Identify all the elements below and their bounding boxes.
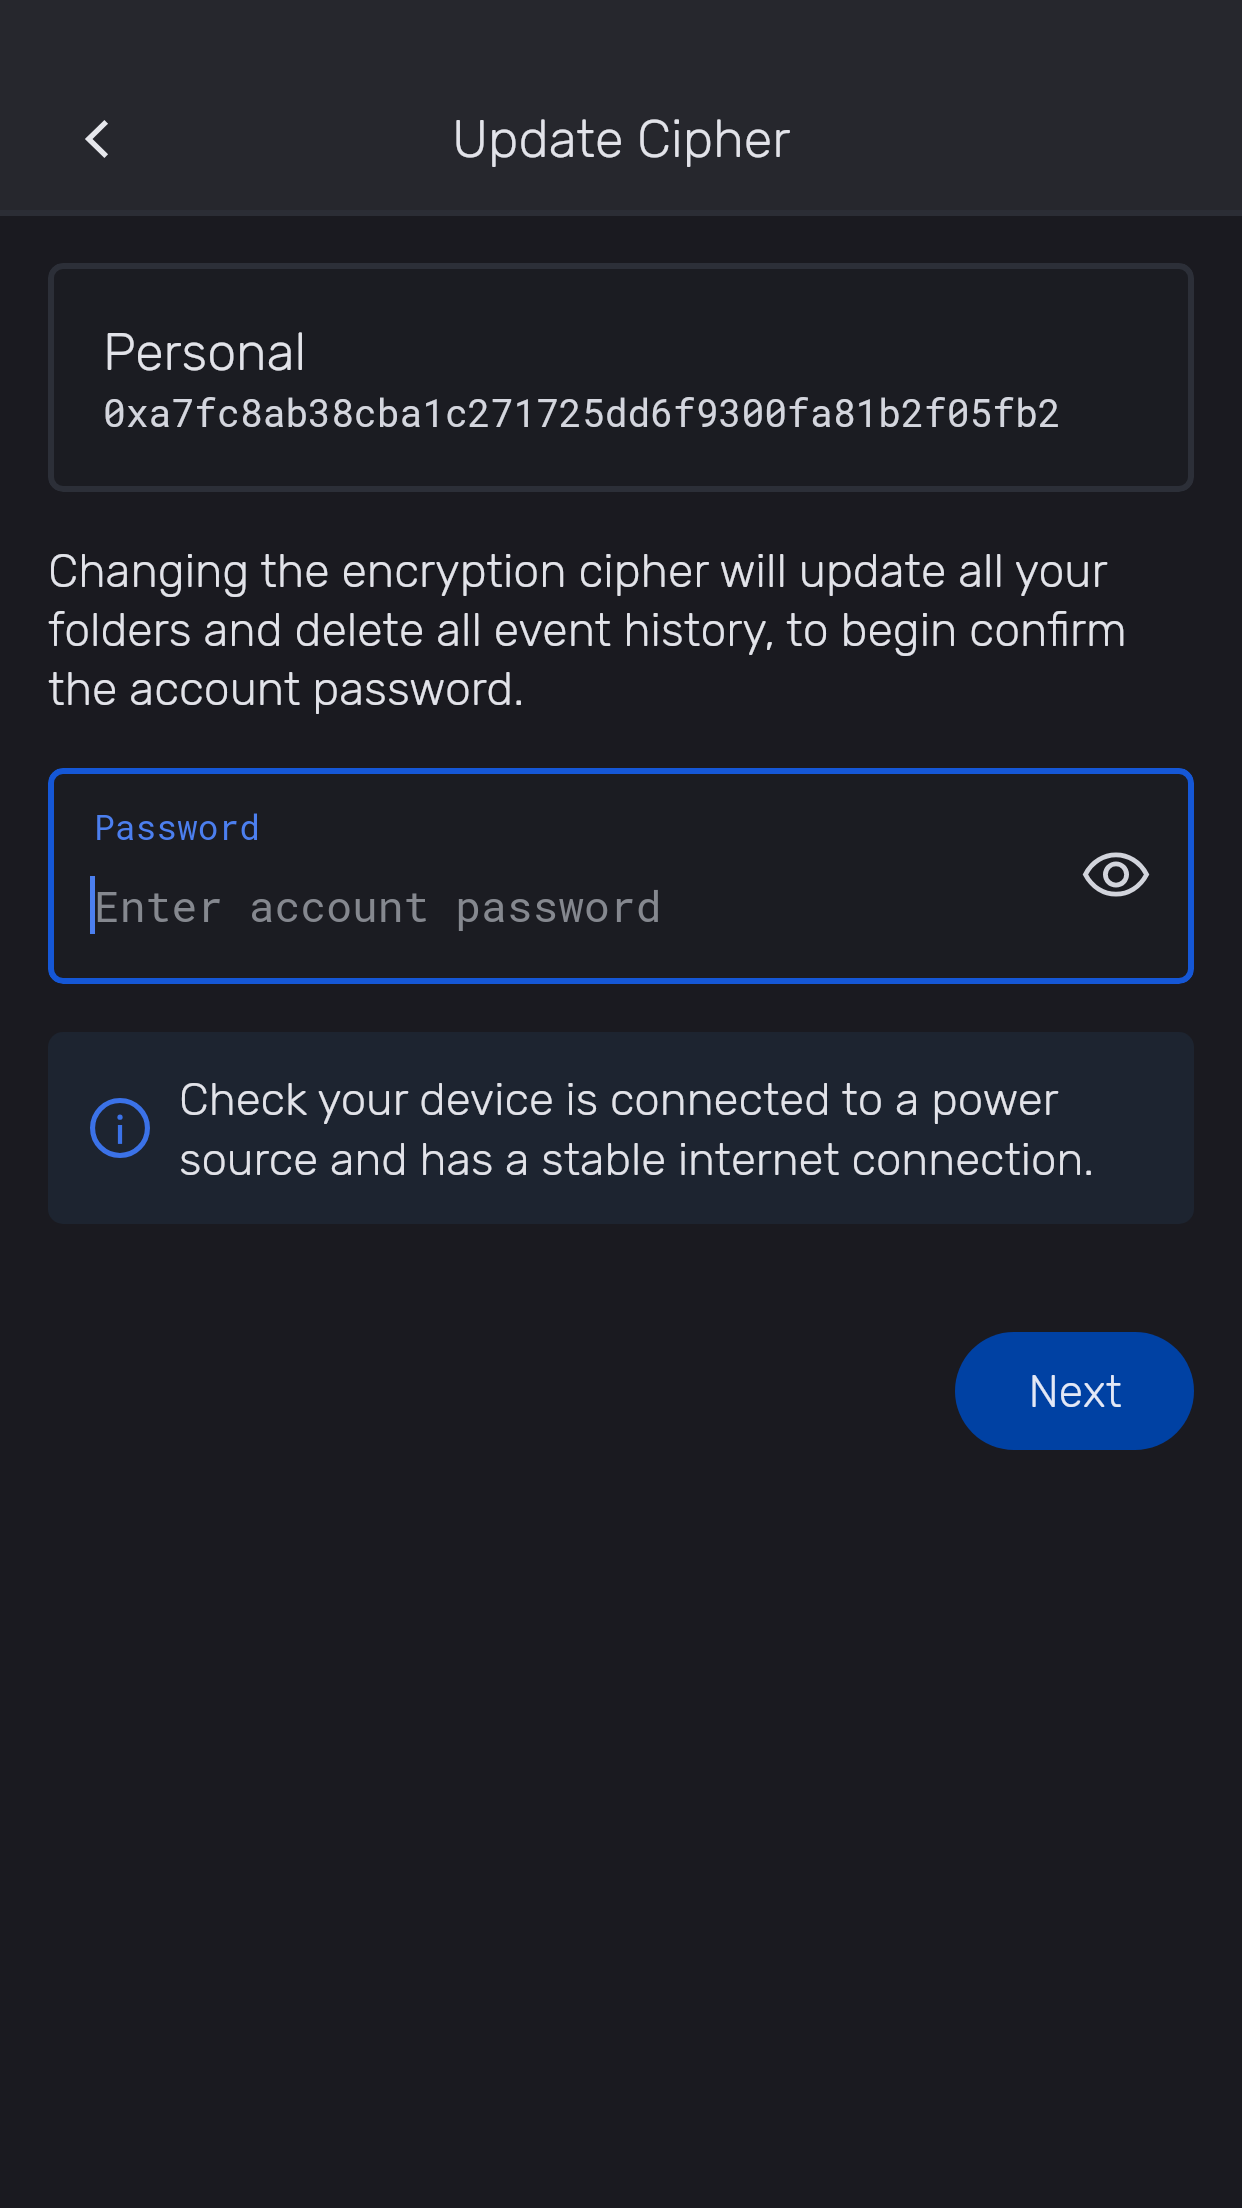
staticText: Next	[1028, 1365, 1122, 1418]
staticText: Update Cipher	[452, 108, 791, 170]
button[interactable]: Back	[21, 67, 171, 210]
button[interactable]: Personal	[48, 263, 1194, 492]
staticText: Check your device is connected to a powe…	[179, 1068, 1152, 1188]
button[interactable]: Password	[48, 768, 1194, 984]
staticText: Password	[94, 804, 261, 850]
staticText: Changing the encryption cipher will upda…	[48, 541, 1194, 718]
staticText: Personal	[103, 321, 307, 383]
staticText: Enter account password	[94, 877, 662, 934]
staticText: 0xa7fc8ab38cba1c271725dd6f9300fa81b2f05f…	[103, 387, 1061, 437]
button[interactable]: Show password	[1050, 808, 1182, 940]
button[interactable]: Next	[955, 1332, 1194, 1450]
